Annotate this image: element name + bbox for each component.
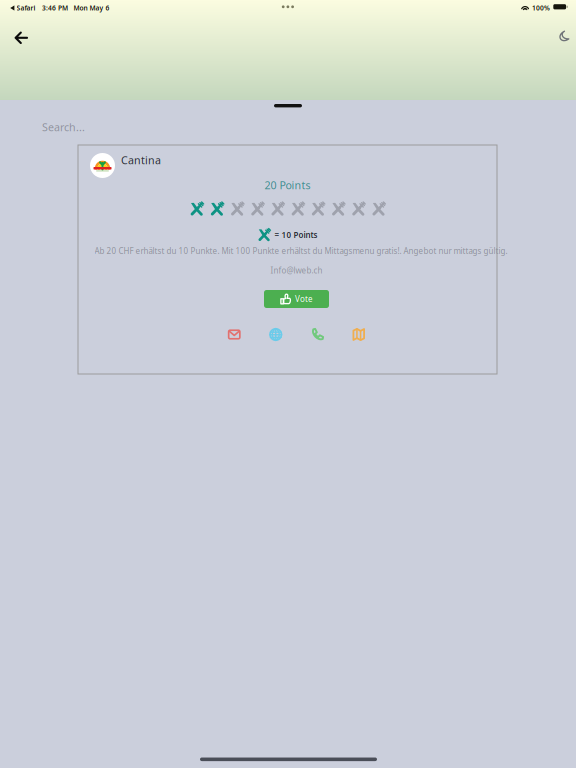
button[interactable]: Website bbox=[269, 328, 282, 341]
staticText: = 10 Points bbox=[274, 230, 317, 240]
button[interactable]: Map bbox=[352, 328, 365, 341]
button[interactable]: Back bbox=[5, 23, 37, 53]
staticText: Vote bbox=[295, 294, 313, 304]
button[interactable]: Email bbox=[228, 328, 241, 341]
staticText: Info@lweb.ch bbox=[270, 265, 322, 276]
staticText: 100% bbox=[532, 3, 550, 12]
staticText: Cantina bbox=[121, 153, 161, 167]
staticText: Ab 20 CHF erhältst du 10 Punkte. Mit 100… bbox=[94, 246, 507, 256]
staticText: Mon May 6 bbox=[74, 3, 110, 12]
staticText: 20 Points bbox=[264, 178, 310, 192]
staticText: Safari bbox=[16, 3, 35, 12]
staticText: 3:46 PM bbox=[42, 3, 68, 12]
button[interactable]: Vote bbox=[264, 290, 329, 308]
button[interactable]: Call bbox=[311, 328, 324, 341]
button[interactable]: Toggle dark mode bbox=[548, 21, 576, 51]
staticText: Search... bbox=[42, 120, 85, 134]
